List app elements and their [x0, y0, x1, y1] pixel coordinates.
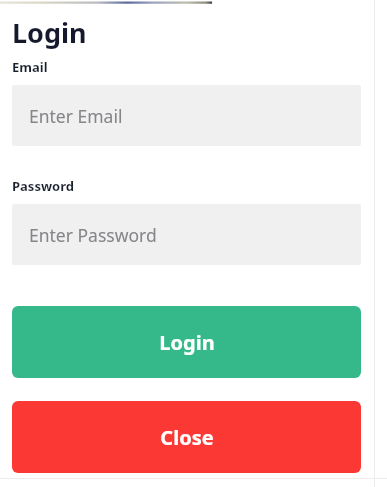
staticText: Enter Email: [29, 104, 123, 128]
staticText: Email: [12, 58, 48, 76]
button[interactable]: Login: [12, 306, 361, 378]
button[interactable]: Close: [12, 401, 361, 473]
other: Loading progress: [0, 0, 387, 6]
button[interactable]: Enter Password: [12, 204, 361, 265]
staticText: Login: [159, 329, 215, 356]
staticText: Password: [12, 177, 74, 195]
staticText: Close: [160, 424, 214, 451]
staticText: Login: [12, 14, 87, 51]
staticText: Enter Password: [29, 223, 157, 247]
button[interactable]: Enter Email: [12, 85, 361, 146]
